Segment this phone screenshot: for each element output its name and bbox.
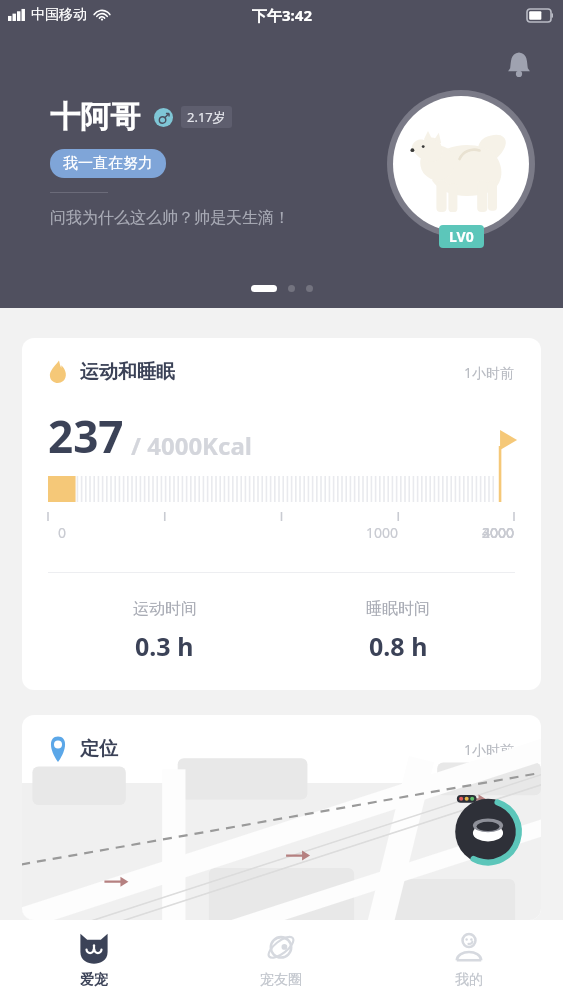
staticText: 定位 xyxy=(80,737,118,761)
button[interactable]: 宠友圈 xyxy=(187,920,375,1000)
staticText: 1小时前 xyxy=(464,740,515,759)
button[interactable]: Notifications xyxy=(497,42,541,86)
staticText: 睡眠时间 xyxy=(366,599,430,619)
other: Device tracker xyxy=(447,789,529,871)
staticText: 运动和睡眠 xyxy=(80,360,175,384)
staticText: 1000 xyxy=(366,523,399,542)
staticText: 0.3 h xyxy=(135,629,194,663)
staticText: 我的 xyxy=(455,971,483,989)
staticText: / 4000Kcal xyxy=(131,429,252,462)
staticText: 0 xyxy=(58,523,67,542)
staticText: 下午3:42 xyxy=(252,5,312,25)
staticText: 运动时间 xyxy=(133,599,197,619)
staticText: 4000 xyxy=(482,523,515,542)
button[interactable]: Pet avatar xyxy=(387,90,535,238)
staticText: 问我为什么这么帅？帅是天生滴！ xyxy=(50,208,290,228)
staticText: 爱宠 xyxy=(80,971,108,989)
staticText: 0.8 h xyxy=(369,629,428,663)
staticText: 十阿哥 xyxy=(50,98,140,136)
button[interactable]: 定位 xyxy=(22,715,541,920)
staticText: 宠友圈 xyxy=(260,971,302,989)
staticText: 2.17岁 xyxy=(187,108,226,126)
button[interactable]: 我一直在努力 xyxy=(50,149,166,178)
staticText: 2000 xyxy=(482,523,515,542)
staticText: 237 xyxy=(48,406,124,466)
button[interactable]: 爱宠 xyxy=(0,920,187,1000)
button[interactable]: 运动和睡眠 xyxy=(22,338,541,690)
staticText: 我一直在努力 xyxy=(63,154,153,173)
staticText: 1小时前 xyxy=(464,363,515,382)
staticText: 3000 xyxy=(482,523,515,542)
button[interactable]: 我的 xyxy=(375,920,563,1000)
staticText: LV0 xyxy=(449,227,474,246)
staticText: 中国移动 xyxy=(31,6,87,24)
